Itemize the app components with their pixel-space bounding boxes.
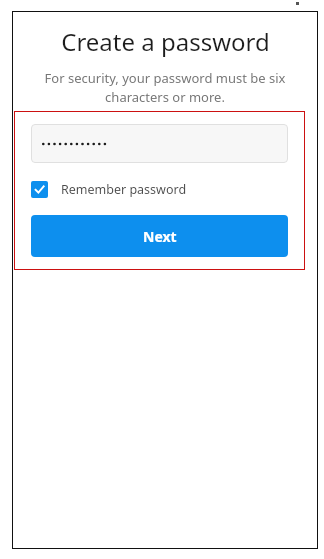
staticText: Remember password	[61, 181, 187, 198]
button[interactable]: Password	[31, 124, 288, 163]
staticText: For security, your password must be six …	[41, 69, 289, 106]
button[interactable]: Remember password	[31, 178, 187, 200]
staticText: Create a password	[61, 25, 270, 58]
staticText: Next	[143, 227, 177, 246]
button[interactable]: Next	[31, 215, 288, 257]
